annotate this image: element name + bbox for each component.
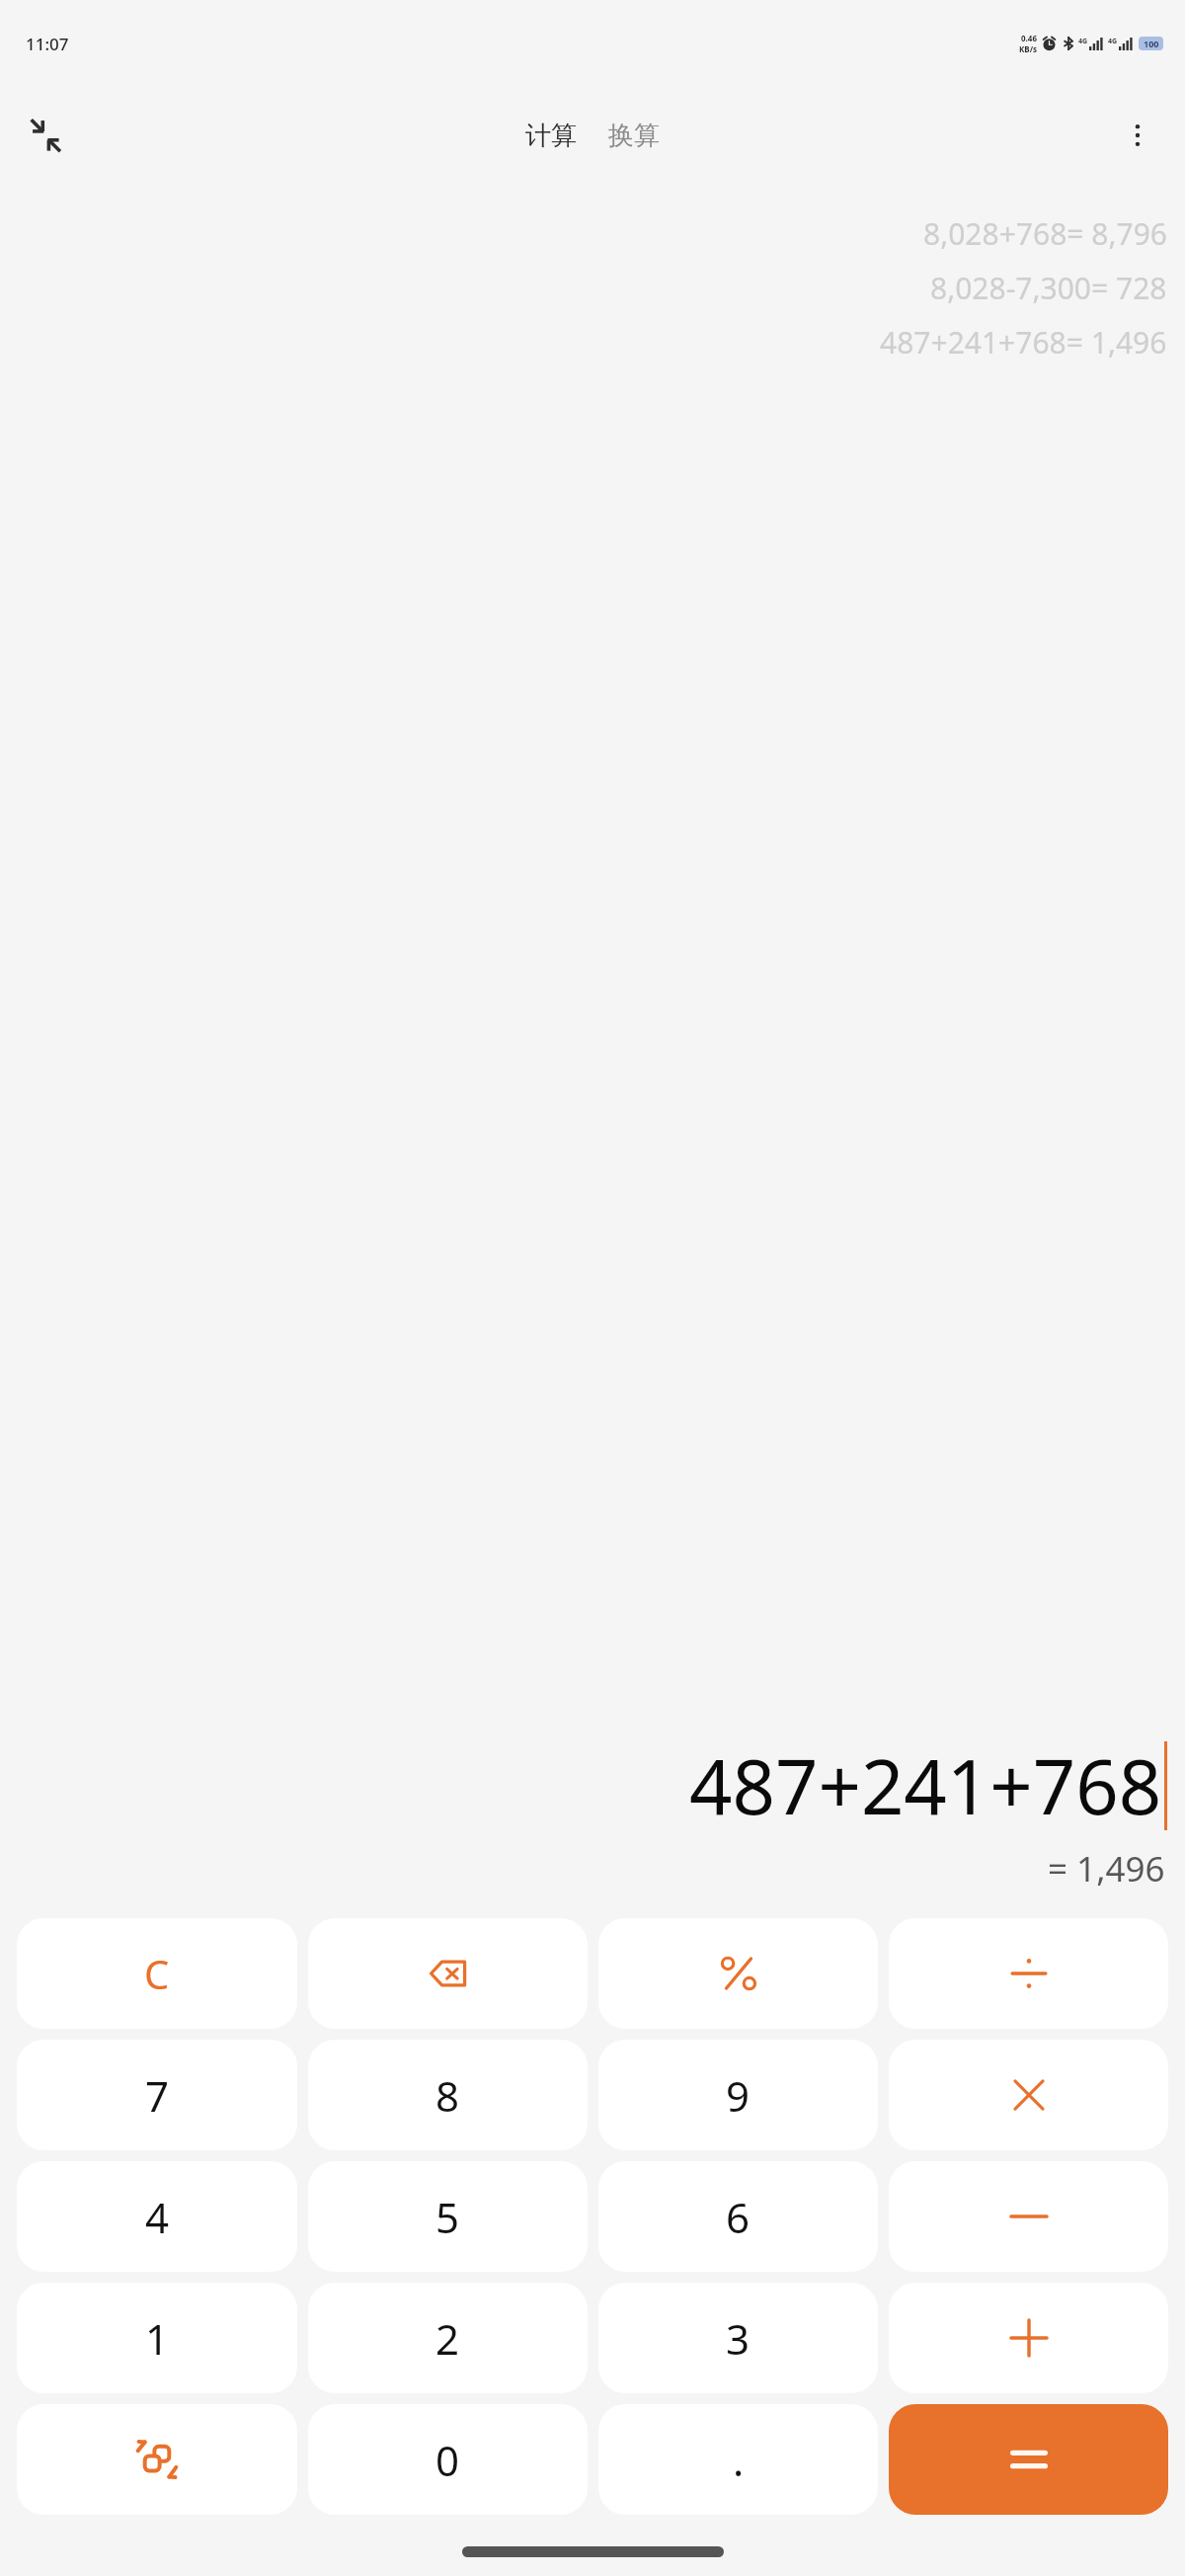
staticText: 3 <box>726 2310 750 2367</box>
staticText: 4G <box>1078 37 1088 46</box>
staticText: 8,028+768= 8,796 <box>923 213 1167 254</box>
staticText: 5 <box>435 2189 460 2245</box>
button[interactable]: 7 <box>17 2040 297 2150</box>
staticText: 8 <box>435 2067 460 2124</box>
button[interactable]: More options <box>1106 104 1169 167</box>
button[interactable]: 换算 <box>600 112 668 160</box>
button[interactable]: 0 <box>308 2404 588 2515</box>
button[interactable]: C <box>17 1918 297 2029</box>
button[interactable]: 计算 <box>517 112 585 160</box>
button[interactable]: . <box>598 2404 878 2515</box>
staticText: 0 <box>435 2432 460 2488</box>
staticText: . <box>733 2432 745 2488</box>
staticText: 0.46 <box>1021 33 1037 43</box>
staticText: 1 <box>145 2310 170 2367</box>
button[interactable]: Collapse <box>14 104 77 167</box>
staticText: 487+241+768= 1,496 <box>880 322 1167 362</box>
staticText: 9 <box>726 2067 750 2124</box>
button[interactable]: Percent <box>598 1918 878 2029</box>
button[interactable]: Minus <box>889 2161 1168 2272</box>
staticText: 100 <box>1144 38 1159 49</box>
button[interactable]: 2 <box>308 2283 588 2393</box>
button[interactable]: Plus <box>889 2283 1168 2393</box>
button[interactable]: 1 <box>17 2283 297 2393</box>
staticText: 8,028-7,300= 728 <box>930 268 1167 308</box>
staticText: 2 <box>435 2310 460 2367</box>
staticText: 11:07 <box>26 33 69 55</box>
button[interactable]: 6 <box>598 2161 878 2272</box>
button[interactable]: Multiply <box>889 2040 1168 2150</box>
button[interactable]: 4 <box>17 2161 297 2272</box>
staticText: 487+241+768 <box>689 1734 1162 1837</box>
button[interactable]: Backspace <box>308 1918 588 2029</box>
staticText: KB/s <box>1019 43 1037 54</box>
staticText: = 1,496 <box>1048 1845 1165 1892</box>
button[interactable]: Convert units <box>17 2404 297 2515</box>
staticText: C <box>144 1947 170 2000</box>
button[interactable]: 9 <box>598 2040 878 2150</box>
button[interactable]: Equals <box>889 2404 1168 2515</box>
staticText: 换算 <box>608 120 660 152</box>
staticText: 6 <box>726 2189 750 2245</box>
staticText: 4G <box>1108 37 1118 46</box>
button[interactable]: 3 <box>598 2283 878 2393</box>
button[interactable]: 8 <box>308 2040 588 2150</box>
staticText: 4 <box>145 2189 170 2245</box>
button[interactable]: Divide <box>889 1918 1168 2029</box>
staticText: 7 <box>145 2067 170 2124</box>
button[interactable]: 5 <box>308 2161 588 2272</box>
staticText: 计算 <box>525 120 577 152</box>
